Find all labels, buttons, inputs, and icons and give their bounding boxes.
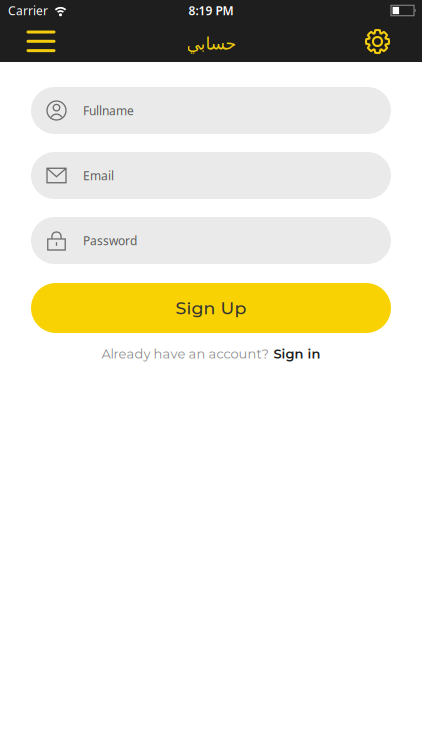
button[interactable]: Menu — [0, 22, 54, 61]
staticText: Password — [83, 232, 137, 248]
button[interactable]: Fullname — [31, 87, 391, 134]
staticText: Fullname — [83, 102, 134, 118]
staticText: Already have an account? — [101, 346, 268, 362]
button[interactable]: Password — [31, 217, 391, 264]
button[interactable]: Email — [31, 152, 391, 199]
button[interactable]: Settings — [366, 21, 422, 62]
staticText: Email — [83, 167, 114, 183]
staticText: حسابي — [186, 34, 236, 53]
staticText: Sign in — [273, 346, 320, 362]
staticText: Carrier — [8, 2, 48, 18]
button[interactable]: Sign in — [273, 346, 320, 362]
staticText: 8:19 PM — [188, 2, 233, 18]
button[interactable]: Sign Up — [31, 283, 391, 333]
staticText: Sign Up — [175, 297, 246, 318]
